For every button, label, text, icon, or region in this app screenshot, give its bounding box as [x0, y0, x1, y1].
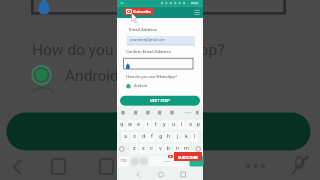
staticText: y	[163, 121, 166, 128]
staticText: How do you use WhatsApp?	[126, 74, 177, 79]
staticText: o	[189, 121, 193, 128]
staticText: s	[133, 133, 136, 140]
staticText: p	[197, 121, 201, 128]
staticText: Android	[134, 84, 147, 88]
staticText: h	[167, 133, 171, 140]
staticText: u	[172, 121, 176, 128]
staticText: q	[120, 121, 124, 128]
staticText: v	[159, 145, 162, 152]
staticText: l	[194, 133, 196, 140]
staticText: e	[137, 121, 140, 128]
staticText: x	[142, 145, 145, 152]
staticText: Confirm Email Address	[126, 49, 171, 54]
staticText: Email Address	[129, 27, 158, 32]
staticText: d	[142, 133, 146, 140]
staticText: j	[177, 133, 179, 140]
staticText: k	[185, 133, 188, 140]
staticText: i	[181, 121, 183, 128]
staticText: m	[184, 145, 189, 152]
staticText: ?123	[120, 159, 127, 163]
staticText: c	[150, 145, 153, 152]
staticText: Subscribe	[133, 9, 151, 14]
button[interactable]: SUBSCRIBE	[167, 152, 202, 161]
staticText: w	[128, 121, 133, 128]
staticText: n	[176, 145, 180, 152]
staticText: r	[147, 121, 149, 128]
staticText: g	[159, 133, 163, 140]
staticText: How do you use WhatsApp?	[32, 41, 225, 59]
staticText: b	[167, 145, 171, 152]
staticText: Android	[65, 67, 119, 85]
staticText: t	[155, 121, 157, 128]
other: Cursor	[131, 13, 137, 22]
button[interactable]: Subscribe	[124, 8, 153, 15]
staticText: a	[124, 133, 128, 140]
staticText: yourname@gmail.com	[130, 38, 166, 42]
staticText: NEXT STEP	[150, 98, 170, 102]
staticText: SUBSCRIBE	[178, 155, 199, 159]
staticText: f	[151, 133, 153, 140]
staticText: z	[133, 145, 136, 152]
